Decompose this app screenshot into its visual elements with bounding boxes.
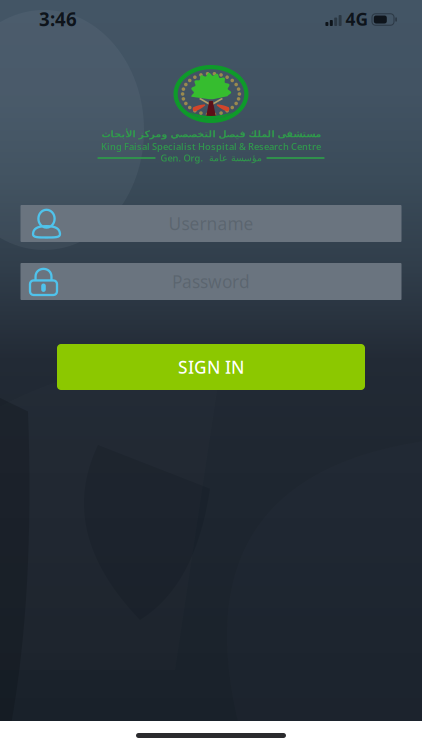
staticText: Username [168, 212, 253, 235]
staticText: King Faisal Specialist Hospital & Resear… [101, 140, 321, 153]
staticText: 4G [345, 7, 368, 30]
staticText: مؤسسة عامة [208, 153, 261, 163]
staticText: Password [172, 270, 250, 293]
staticText: 3:46 [39, 7, 77, 31]
button[interactable]: SIGN IN [57, 344, 365, 390]
staticText: Gen. Org. [160, 152, 203, 164]
button[interactable]: Username [20, 205, 401, 242]
staticText: SIGN IN [178, 355, 244, 378]
staticText: مستشفى الملك فيصل التخصصي ومركز الأبحاث [101, 129, 321, 139]
button[interactable]: Password [20, 263, 401, 300]
